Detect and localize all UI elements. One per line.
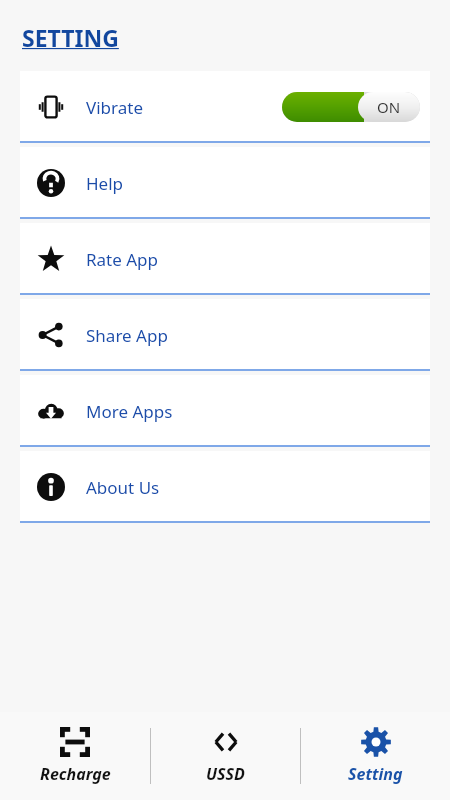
- button[interactable]: Rate App: [20, 223, 430, 295]
- button[interactable]: Share App: [20, 299, 430, 371]
- staticText: SETTING: [22, 22, 119, 53]
- staticText: USSD: [206, 763, 245, 785]
- staticText: Help: [86, 172, 124, 195]
- staticText: Vibrate: [86, 96, 143, 119]
- staticText: Rate App: [86, 248, 159, 271]
- button[interactable]: More Apps: [20, 375, 430, 447]
- staticText: Setting: [348, 763, 403, 785]
- button[interactable]: Vibrate on: [282, 92, 420, 122]
- button[interactable]: Help: [20, 147, 430, 219]
- staticText: Share App: [86, 324, 168, 347]
- button[interactable]: USSD: [151, 712, 300, 800]
- staticText: ON: [377, 97, 401, 117]
- button[interactable]: Vibrate: [20, 71, 430, 143]
- staticText: About Us: [86, 476, 160, 499]
- button[interactable]: About Us: [20, 451, 430, 523]
- staticText: Recharge: [40, 763, 111, 785]
- staticText: More Apps: [86, 400, 173, 423]
- button[interactable]: Recharge: [0, 712, 150, 800]
- button[interactable]: Setting: [301, 712, 450, 800]
